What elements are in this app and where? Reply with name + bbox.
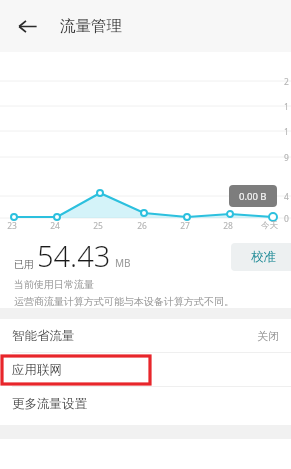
staticText: MB <box>115 256 131 270</box>
staticText: 27 <box>180 220 190 232</box>
staticText: 24 <box>50 220 60 232</box>
staticText: 流量管理 <box>60 16 122 36</box>
staticText: 更多流量设置 <box>12 396 87 412</box>
button[interactable]: 智能省流量 <box>0 319 291 352</box>
staticText: 校准 <box>251 249 276 265</box>
staticText: 0.00 B <box>239 190 267 203</box>
staticText: 26 <box>137 220 147 232</box>
staticText: 4 <box>284 191 289 203</box>
staticText: 54.43 <box>37 236 111 275</box>
staticText: 1 <box>284 126 289 138</box>
button[interactable]: 应用联网 <box>0 353 291 386</box>
staticText: 1 <box>284 101 289 113</box>
button[interactable]: Back <box>8 7 46 45</box>
staticText: 9 <box>284 152 289 164</box>
button[interactable]: 校准 <box>231 243 291 271</box>
staticText: 关闭 <box>257 329 279 343</box>
staticText: 28 <box>223 220 233 232</box>
staticText: 智能省流量 <box>12 328 75 344</box>
staticText: 今天 <box>261 220 278 231</box>
staticText: 应用联网 <box>12 362 62 378</box>
staticText: 23 <box>7 220 17 232</box>
staticText: 0 <box>284 213 289 225</box>
staticText: 运营商流量计算方式可能与本设备计算方式不同。 <box>14 295 234 308</box>
staticText: 25 <box>93 220 103 232</box>
staticText: 当前使用日常流量 <box>14 278 94 291</box>
staticText: 2 <box>284 76 289 88</box>
button[interactable]: 更多流量设置 <box>0 387 291 420</box>
staticText: 已用 <box>14 258 34 271</box>
